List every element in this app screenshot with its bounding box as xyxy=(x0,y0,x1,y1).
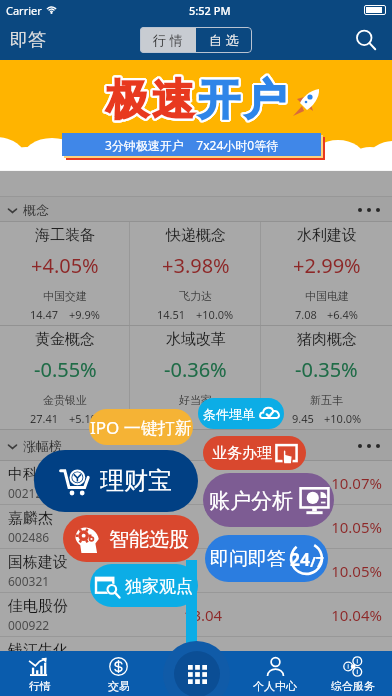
button[interactable]: 账户分析 xyxy=(203,473,334,527)
staticText: 中国交建 xyxy=(43,289,87,303)
staticText: 极速开户 xyxy=(104,73,288,126)
staticText: 行情 xyxy=(29,679,51,693)
staticText: 13.04 xyxy=(140,605,266,625)
staticText: 极速开户 xyxy=(103,73,287,126)
button[interactable]: 钱江生化 xyxy=(0,637,392,680)
staticText: 9.45 xyxy=(292,411,314,426)
staticText: 极速开户 xyxy=(103,74,287,127)
staticText: 猪肉概念 xyxy=(297,330,357,349)
staticText: 极速开户 xyxy=(103,72,287,125)
staticText: +5.1% xyxy=(69,411,100,426)
staticText: Carrier xyxy=(6,3,42,18)
staticText: 独家观点 xyxy=(125,576,193,597)
staticText: 极速开户 xyxy=(102,74,286,127)
staticText: -0.55% xyxy=(34,356,97,383)
staticText: 14.47 xyxy=(30,307,59,322)
staticText: 水域改革 xyxy=(166,330,226,349)
staticText: +2.99% xyxy=(293,252,361,279)
staticText: 极速开户 xyxy=(104,75,288,128)
staticText xyxy=(140,561,266,581)
staticText: 5:52 PM xyxy=(189,3,231,18)
button[interactable]: 理财宝 xyxy=(34,450,198,512)
button[interactable]: 智能选股 xyxy=(63,515,199,562)
button[interactable]: Search xyxy=(350,24,382,56)
staticText: +4.05% xyxy=(31,252,99,279)
staticText: +10.0% xyxy=(324,411,362,426)
button[interactable]: 海工装备 xyxy=(0,222,130,325)
button[interactable]: 中科三环 xyxy=(0,461,392,504)
button[interactable]: 水域改革 xyxy=(130,326,261,429)
staticText: 极速开户 xyxy=(105,75,289,128)
staticText: 综合服务 xyxy=(331,679,375,693)
button[interactable]: 自 选 xyxy=(196,27,252,53)
staticText: -0.35% xyxy=(295,356,358,383)
staticText: 极速开户 xyxy=(103,76,287,129)
staticText: 概念 xyxy=(23,202,49,218)
staticText: 业务办理 xyxy=(212,444,272,463)
button[interactable]: 嘉麟杰 xyxy=(0,505,392,548)
staticText: 交易 xyxy=(108,679,130,693)
button[interactable]: 综合服务 xyxy=(314,651,392,696)
button[interactable]: 快递概念 xyxy=(130,222,261,325)
staticText: 极速开户 xyxy=(105,76,289,129)
button[interactable]: 行 情 xyxy=(140,27,196,53)
staticText: 10.07% xyxy=(266,473,382,493)
staticText: 水利建设 xyxy=(297,226,357,245)
staticText: /7 xyxy=(310,552,324,571)
staticText: 极速开户 xyxy=(104,76,288,129)
staticText: 中国电建 xyxy=(305,289,349,303)
staticText: 14.51 xyxy=(157,307,186,322)
button[interactable]: 条件埋单 xyxy=(198,398,284,429)
button[interactable]: 黄金概念 xyxy=(0,326,130,429)
button[interactable]: 交易 xyxy=(79,651,158,696)
staticText: 10.03% xyxy=(266,649,382,669)
button[interactable]: 即答 xyxy=(10,29,46,52)
staticText: 002486 xyxy=(8,529,50,545)
button[interactable]: 国栋建设 xyxy=(0,549,392,592)
button[interactable]: 猪肉概念 xyxy=(261,326,392,429)
staticText: +3.98% xyxy=(162,252,230,279)
staticText: IPO 一键打新 xyxy=(90,416,192,439)
staticText: 账户分析 xyxy=(209,488,293,514)
staticText: 飞力达 xyxy=(179,289,212,303)
button[interactable]: 概念 xyxy=(0,197,392,222)
staticText: 好当家 xyxy=(179,393,212,407)
staticText: 理财宝 xyxy=(100,466,172,496)
button[interactable]: 佳电股份 xyxy=(0,593,392,636)
staticText: 002123 xyxy=(8,485,50,501)
staticText: 国栋建设 xyxy=(8,553,68,572)
staticText: 极速开户 xyxy=(106,74,290,127)
staticText: 佳电股份 xyxy=(8,597,68,616)
staticText: 极速 xyxy=(104,74,196,127)
staticText: 涨幅榜 xyxy=(23,438,62,454)
button[interactable]: 水利建设 xyxy=(261,222,392,325)
staticText: 开户 xyxy=(196,74,288,127)
staticText xyxy=(140,517,266,537)
staticText: 钱江生化 xyxy=(8,641,68,660)
staticText: 000922 xyxy=(8,617,50,633)
button[interactable]: 涨幅榜 xyxy=(0,430,392,461)
staticText: +6.4% xyxy=(327,307,358,322)
staticText xyxy=(140,473,266,493)
staticText: 极速开户 xyxy=(102,73,286,126)
staticText: 个人中心 xyxy=(253,679,297,693)
staticText: 自 选 xyxy=(209,31,239,49)
button[interactable]: IPO 一键打新 xyxy=(89,409,193,445)
button[interactable]: 即问即答 xyxy=(205,535,328,582)
staticText: 智能选股 xyxy=(109,527,189,552)
staticText: 10.04% xyxy=(266,605,382,625)
staticText: 3分钟极速开户 7x24小时0等待 xyxy=(105,137,279,153)
staticText: 行 情 xyxy=(153,31,183,49)
button[interactable]: 行情 xyxy=(0,651,79,696)
staticText: 新五丰 xyxy=(310,393,343,407)
button[interactable]: More apps xyxy=(163,641,230,696)
staticText: 10.05% xyxy=(266,561,382,581)
staticText: 600796 xyxy=(8,661,50,677)
button[interactable]: 个人中心 xyxy=(236,651,314,696)
staticText: 中科三环 xyxy=(8,465,68,484)
staticText: 极速开户 xyxy=(105,73,289,126)
button[interactable]: 独家观点 xyxy=(90,564,198,607)
button[interactable]: 业务办理 xyxy=(203,436,306,470)
staticText: -0.36% xyxy=(164,356,227,383)
staticText: 极速开户 xyxy=(102,75,286,128)
